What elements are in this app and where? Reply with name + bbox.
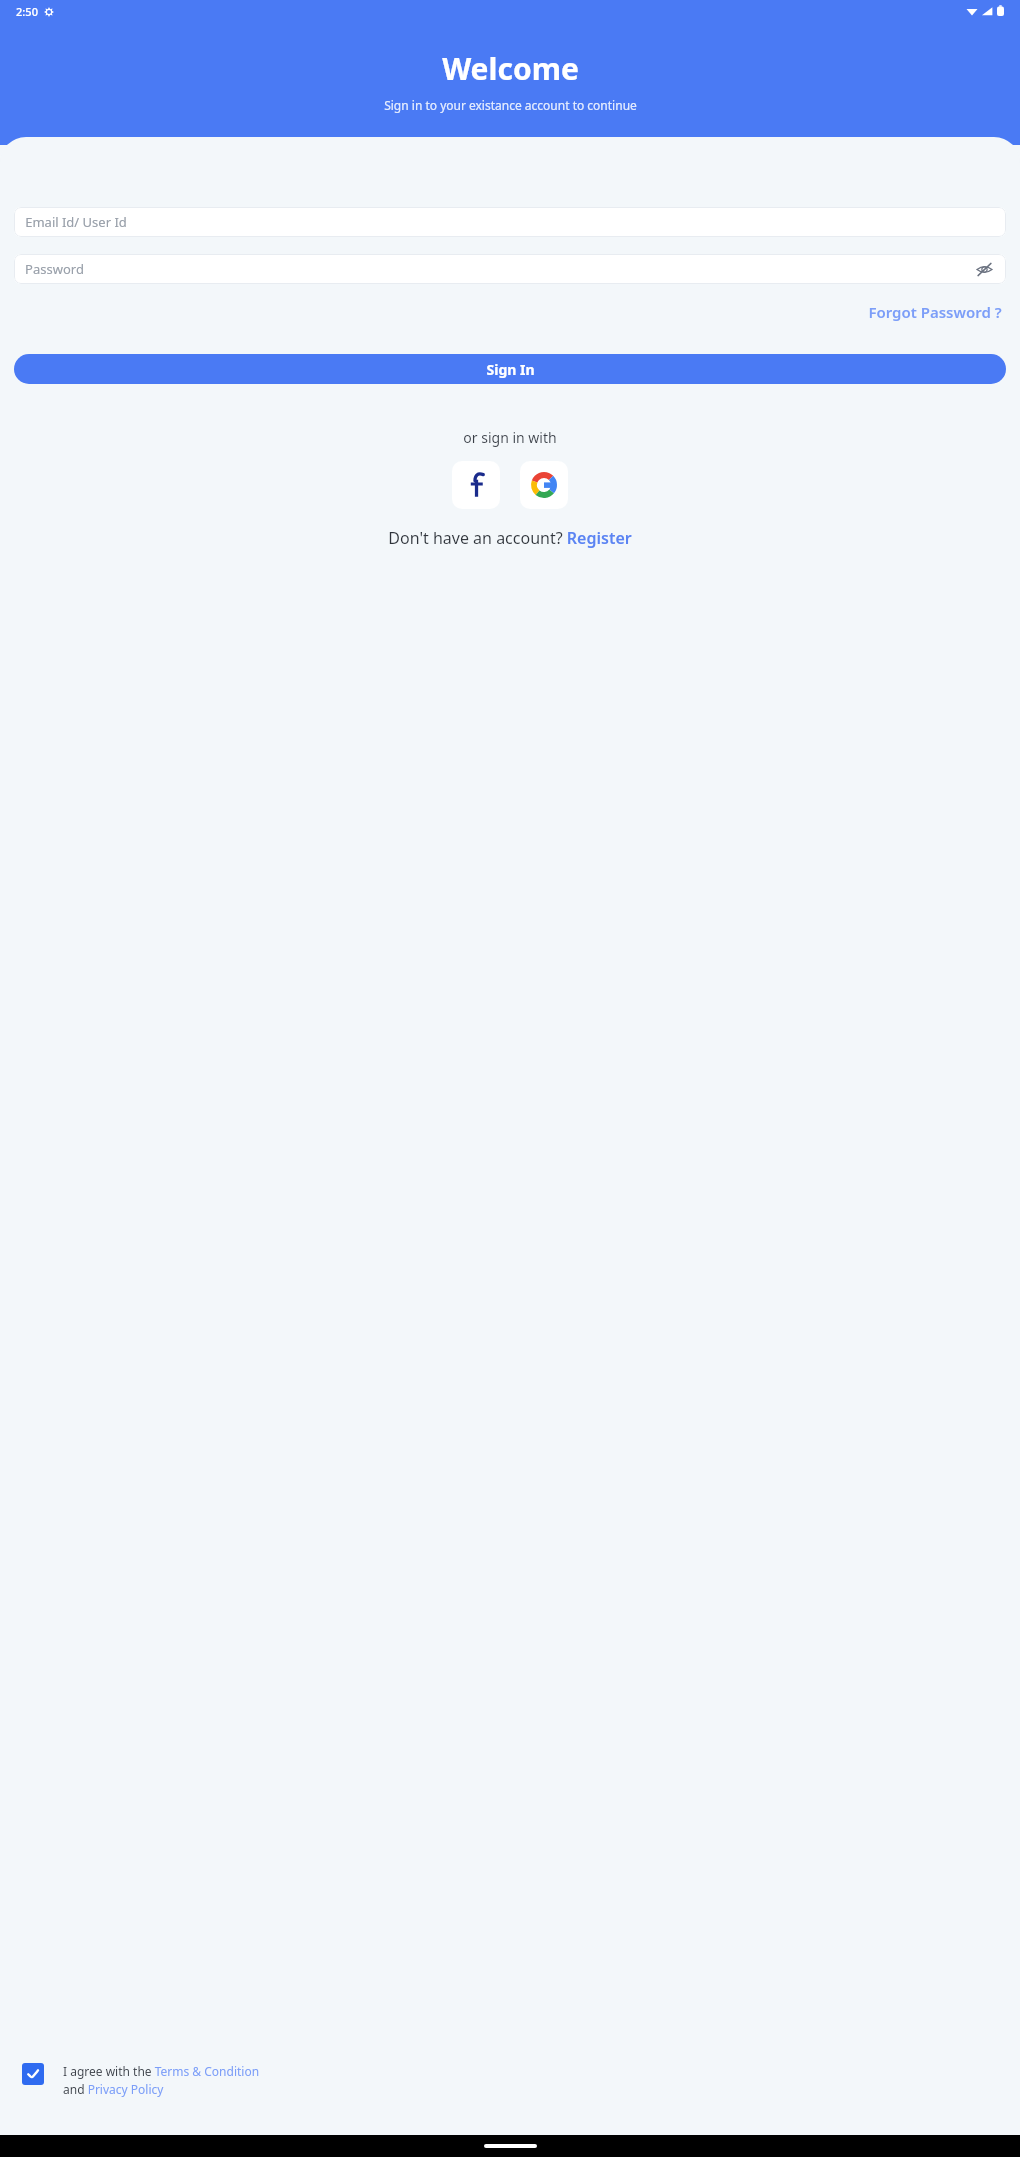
button[interactable]: Show password — [973, 258, 995, 280]
button[interactable]: Email Id/ User Id — [14, 207, 1006, 237]
staticText: Don't have an account? Register — [388, 527, 632, 549]
button[interactable]: Sign in with Google — [520, 461, 568, 509]
button[interactable]: Password — [14, 254, 1006, 284]
staticText: 2:50 — [16, 4, 38, 19]
button[interactable]: Agree to terms — [14, 2063, 1006, 2127]
staticText: Password — [25, 260, 84, 278]
staticText: Welcome — [442, 48, 579, 89]
button[interactable]: Sign in with Facebook — [452, 461, 500, 509]
button[interactable]: Sign In — [14, 354, 1006, 384]
staticText: Sign In — [486, 360, 535, 379]
button[interactable]: Forgot Password ? — [864, 298, 1006, 326]
staticText: Sign in to your existance account to con… — [384, 97, 637, 113]
staticText: I agree with the Terms & Condition and P… — [63, 2063, 278, 2097]
button[interactable]: Don't have an account? Register — [14, 527, 1006, 549]
staticText: Forgot Password ? — [868, 302, 1002, 322]
button[interactable]: Agree to terms — [22, 2063, 44, 2085]
staticText: or sign in with — [463, 428, 557, 447]
staticText: Email Id/ User Id — [25, 213, 127, 231]
